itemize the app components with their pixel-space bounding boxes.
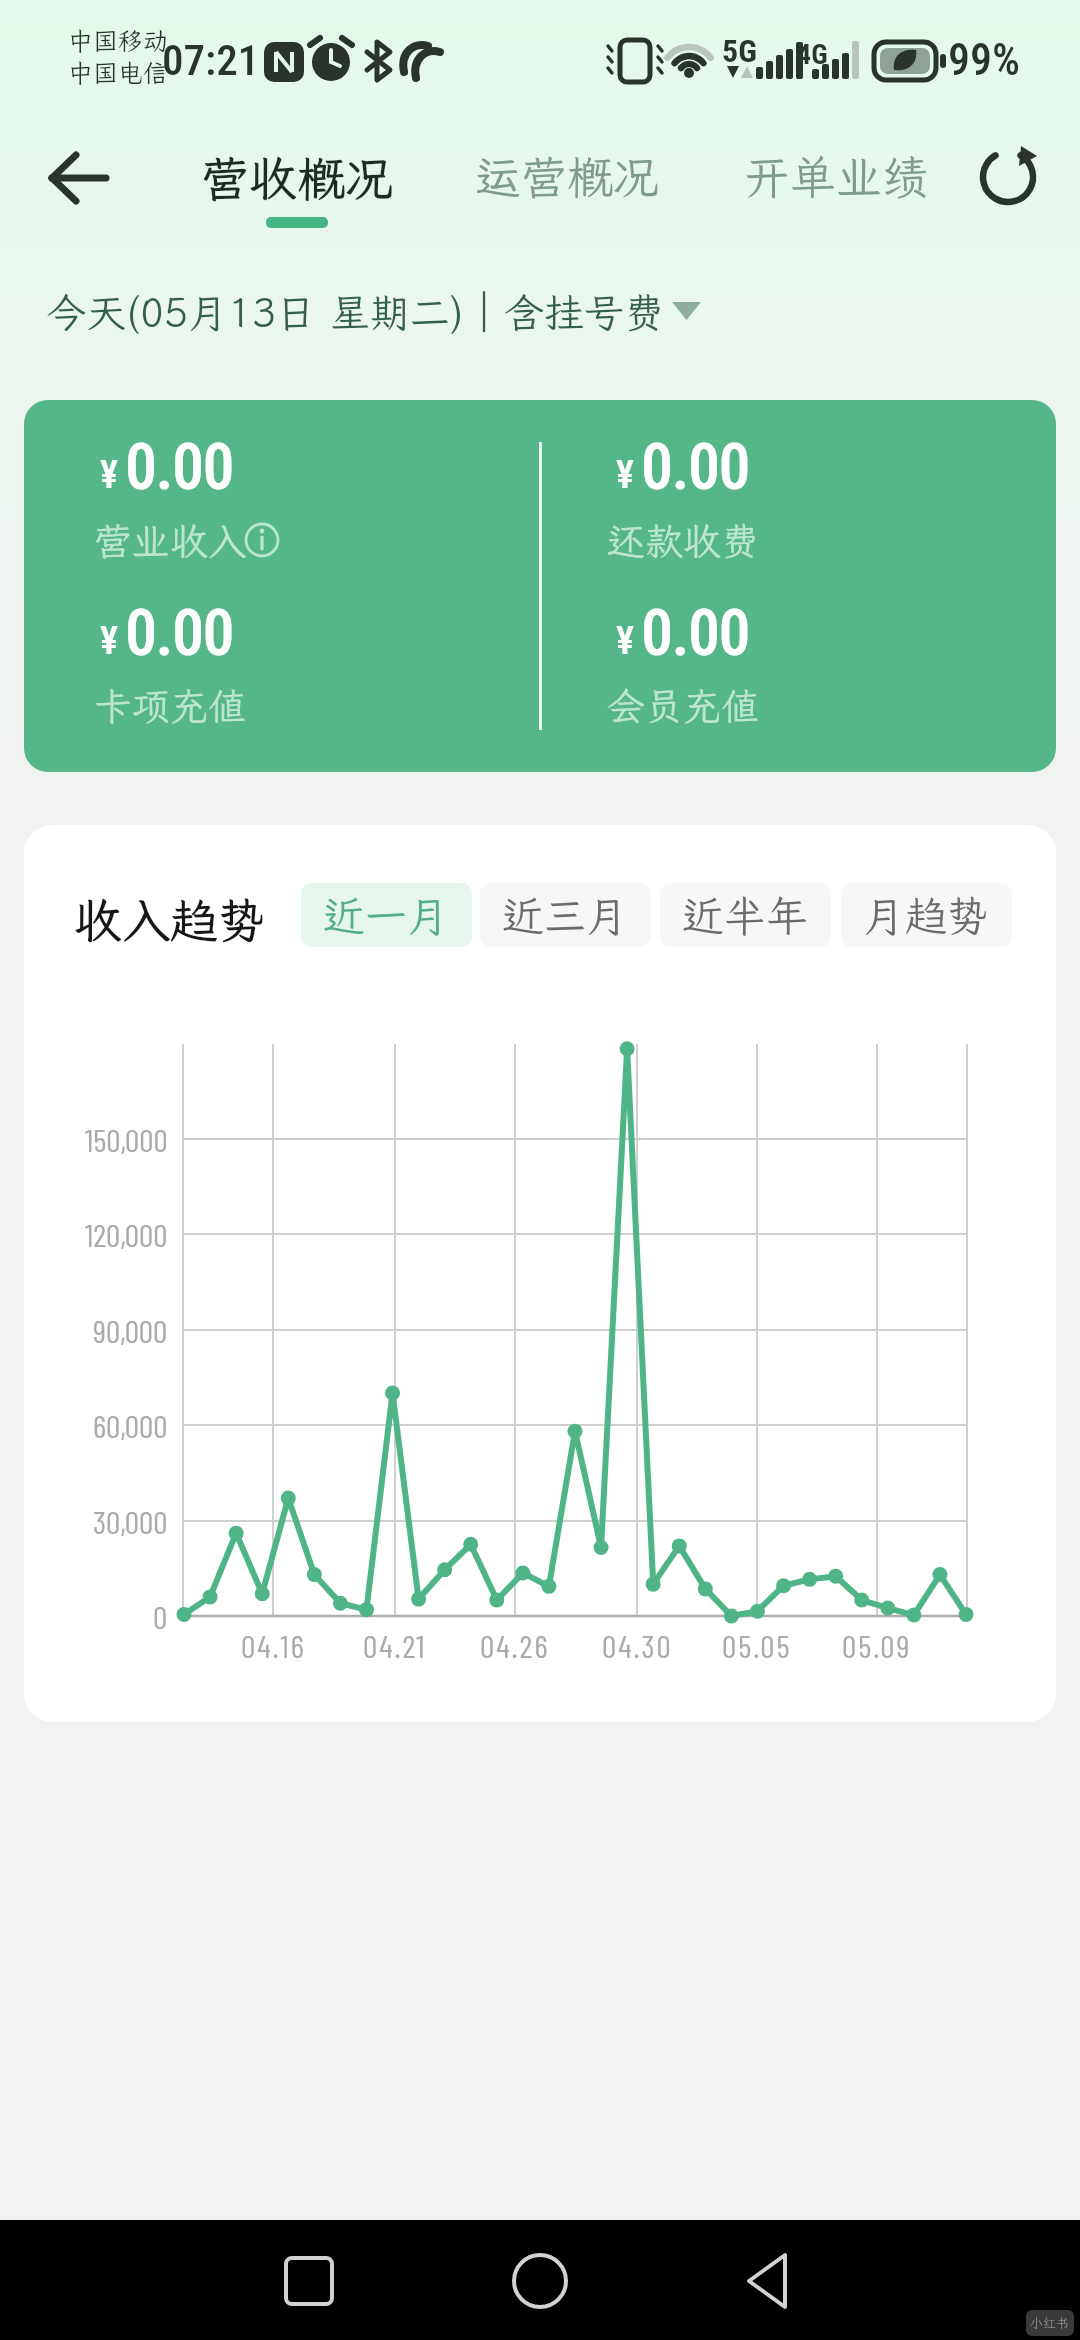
button[interactable]: 运营概况 [457,122,677,232]
staticText: 收入趋势 [74,888,267,951]
staticText: 还款收费 [607,516,760,566]
staticText: 近三月 [502,888,629,943]
staticText: 开单业绩 [744,147,928,208]
staticText: 小红书 [1030,2315,1070,2332]
staticText: 04.21 [363,1626,427,1664]
staticText: 0.00 [125,430,234,505]
staticText: ¥ [100,453,118,498]
button[interactable]: 月趋势 [841,883,1012,947]
staticText: 05.05 [722,1626,792,1664]
staticText: 营业收入 [94,516,247,566]
button[interactable] [34,140,124,216]
staticText: 月趋势 [863,888,990,943]
staticText: 0.00 [641,596,750,671]
staticText: 04.30 [602,1626,673,1664]
button[interactable]: 近三月 [480,883,651,947]
staticText: ¥ [616,453,634,498]
button[interactable]: 近半年 [660,883,831,947]
button[interactable] [259,2231,359,2331]
button[interactable]: 近一月 [301,883,472,947]
staticText: 07:21 [162,35,260,85]
staticText: 90,000 [93,1311,168,1349]
staticText: 0.00 [641,430,750,505]
staticText: 卡项充值 [94,681,247,731]
staticText: 运营概况 [475,147,659,208]
staticText: 120,000 [85,1215,168,1253]
staticText: 04.16 [241,1626,306,1664]
staticText: 中国电信 [68,56,169,89]
staticText: 会员充值 [607,681,760,731]
button[interactable]: 营收概况 [187,122,407,232]
staticText: 0.00 [125,596,234,671]
staticText: 30,000 [93,1502,168,1540]
button[interactable]: 开单业绩 [726,122,946,232]
staticText: 中国移动 [68,24,169,57]
button[interactable] [719,2231,819,2331]
staticText: 99% [948,34,1021,86]
button[interactable] [975,144,1045,210]
staticText: 近一月 [323,888,450,943]
staticText: ¥ [100,619,118,664]
staticText: 5G [722,32,757,70]
button[interactable] [490,2231,590,2331]
staticText: 05.09 [842,1626,912,1664]
staticText: 营收概况 [201,146,394,209]
staticText: 04.26 [480,1626,550,1664]
staticText: 4G [797,38,828,71]
staticText: ¥ [616,619,634,664]
staticText: 今天(05月13日 星期二)｜含挂号费 [46,286,664,339]
staticText: 60,000 [93,1406,168,1444]
button[interactable]: 今天(05月13日 星期二)｜含挂号费 [40,280,720,344]
staticText: 150,000 [85,1120,168,1158]
staticText: 近半年 [682,888,809,943]
staticText: 0 [153,1597,168,1635]
